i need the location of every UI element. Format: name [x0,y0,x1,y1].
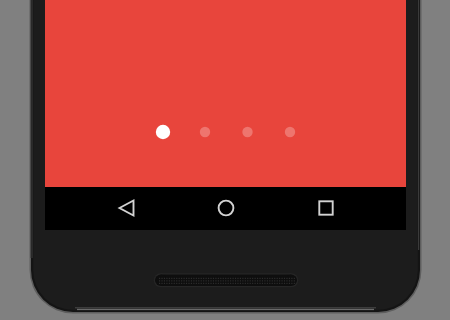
button[interactable]: Back [45,187,165,230]
button[interactable]: Page 2 [194,121,216,143]
button[interactable]: Page 3 [236,121,258,143]
button[interactable]: Home [165,187,285,230]
button[interactable]: Page 4 [279,121,301,143]
button[interactable]: Recent apps [285,187,405,230]
button[interactable]: Page 1 [152,121,174,143]
